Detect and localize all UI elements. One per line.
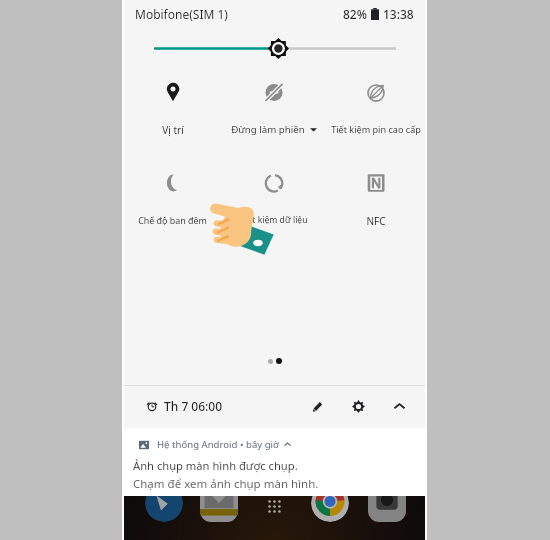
staticText: Chạm để xem ảnh chụp màn hình.	[133, 476, 319, 492]
button[interactable]: Edit	[304, 393, 330, 419]
button[interactable]: Đừng làm phiền	[223, 72, 325, 152]
staticText: 13:38	[383, 6, 414, 22]
button[interactable]: Tiết kiệm pin cao cấp	[325, 72, 427, 152]
staticText: Th 7 06:00	[164, 398, 223, 414]
staticText: Tiết kiệm dữ liệu	[240, 214, 308, 226]
staticText: Chế độ ban đêm	[138, 214, 207, 226]
button[interactable]: Hệ thống Android • bây giờ	[122, 428, 427, 496]
button[interactable]: Collapse	[386, 393, 412, 419]
staticText: 82%	[343, 6, 367, 22]
staticText: NFC	[366, 214, 386, 228]
button[interactable]: Tiết kiệm dữ liệu	[223, 163, 325, 243]
staticText: Vị trí	[162, 123, 184, 137]
staticText: Ảnh chụp màn hình được chụp.	[133, 458, 298, 473]
staticText: Mobifone(SIM 1)	[135, 6, 228, 22]
button[interactable]: Chế độ ban đêm	[122, 163, 223, 243]
staticText: Tiết kiệm pin cao cấp	[331, 123, 421, 135]
staticText: Hệ thống Android • bây giờ	[157, 438, 279, 451]
button[interactable]: Settings	[345, 393, 371, 419]
button[interactable]: Vị trí	[122, 72, 223, 152]
button[interactable]: NFC	[325, 163, 427, 243]
staticText: Đừng làm phiền	[231, 123, 305, 136]
